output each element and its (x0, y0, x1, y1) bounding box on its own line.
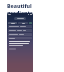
button[interactable] (8, 29, 32, 32)
button[interactable] (8, 37, 32, 39)
staticText: Beautiful (7, 2, 32, 9)
button[interactable] (8, 25, 32, 28)
button[interactable]: Details (18, 22, 28, 24)
button[interactable]: Overview (8, 22, 17, 24)
staticText: gradients (7, 9, 33, 16)
button[interactable] (8, 33, 32, 36)
button[interactable] (14, 17, 26, 20)
button[interactable]: Status (29, 22, 32, 24)
